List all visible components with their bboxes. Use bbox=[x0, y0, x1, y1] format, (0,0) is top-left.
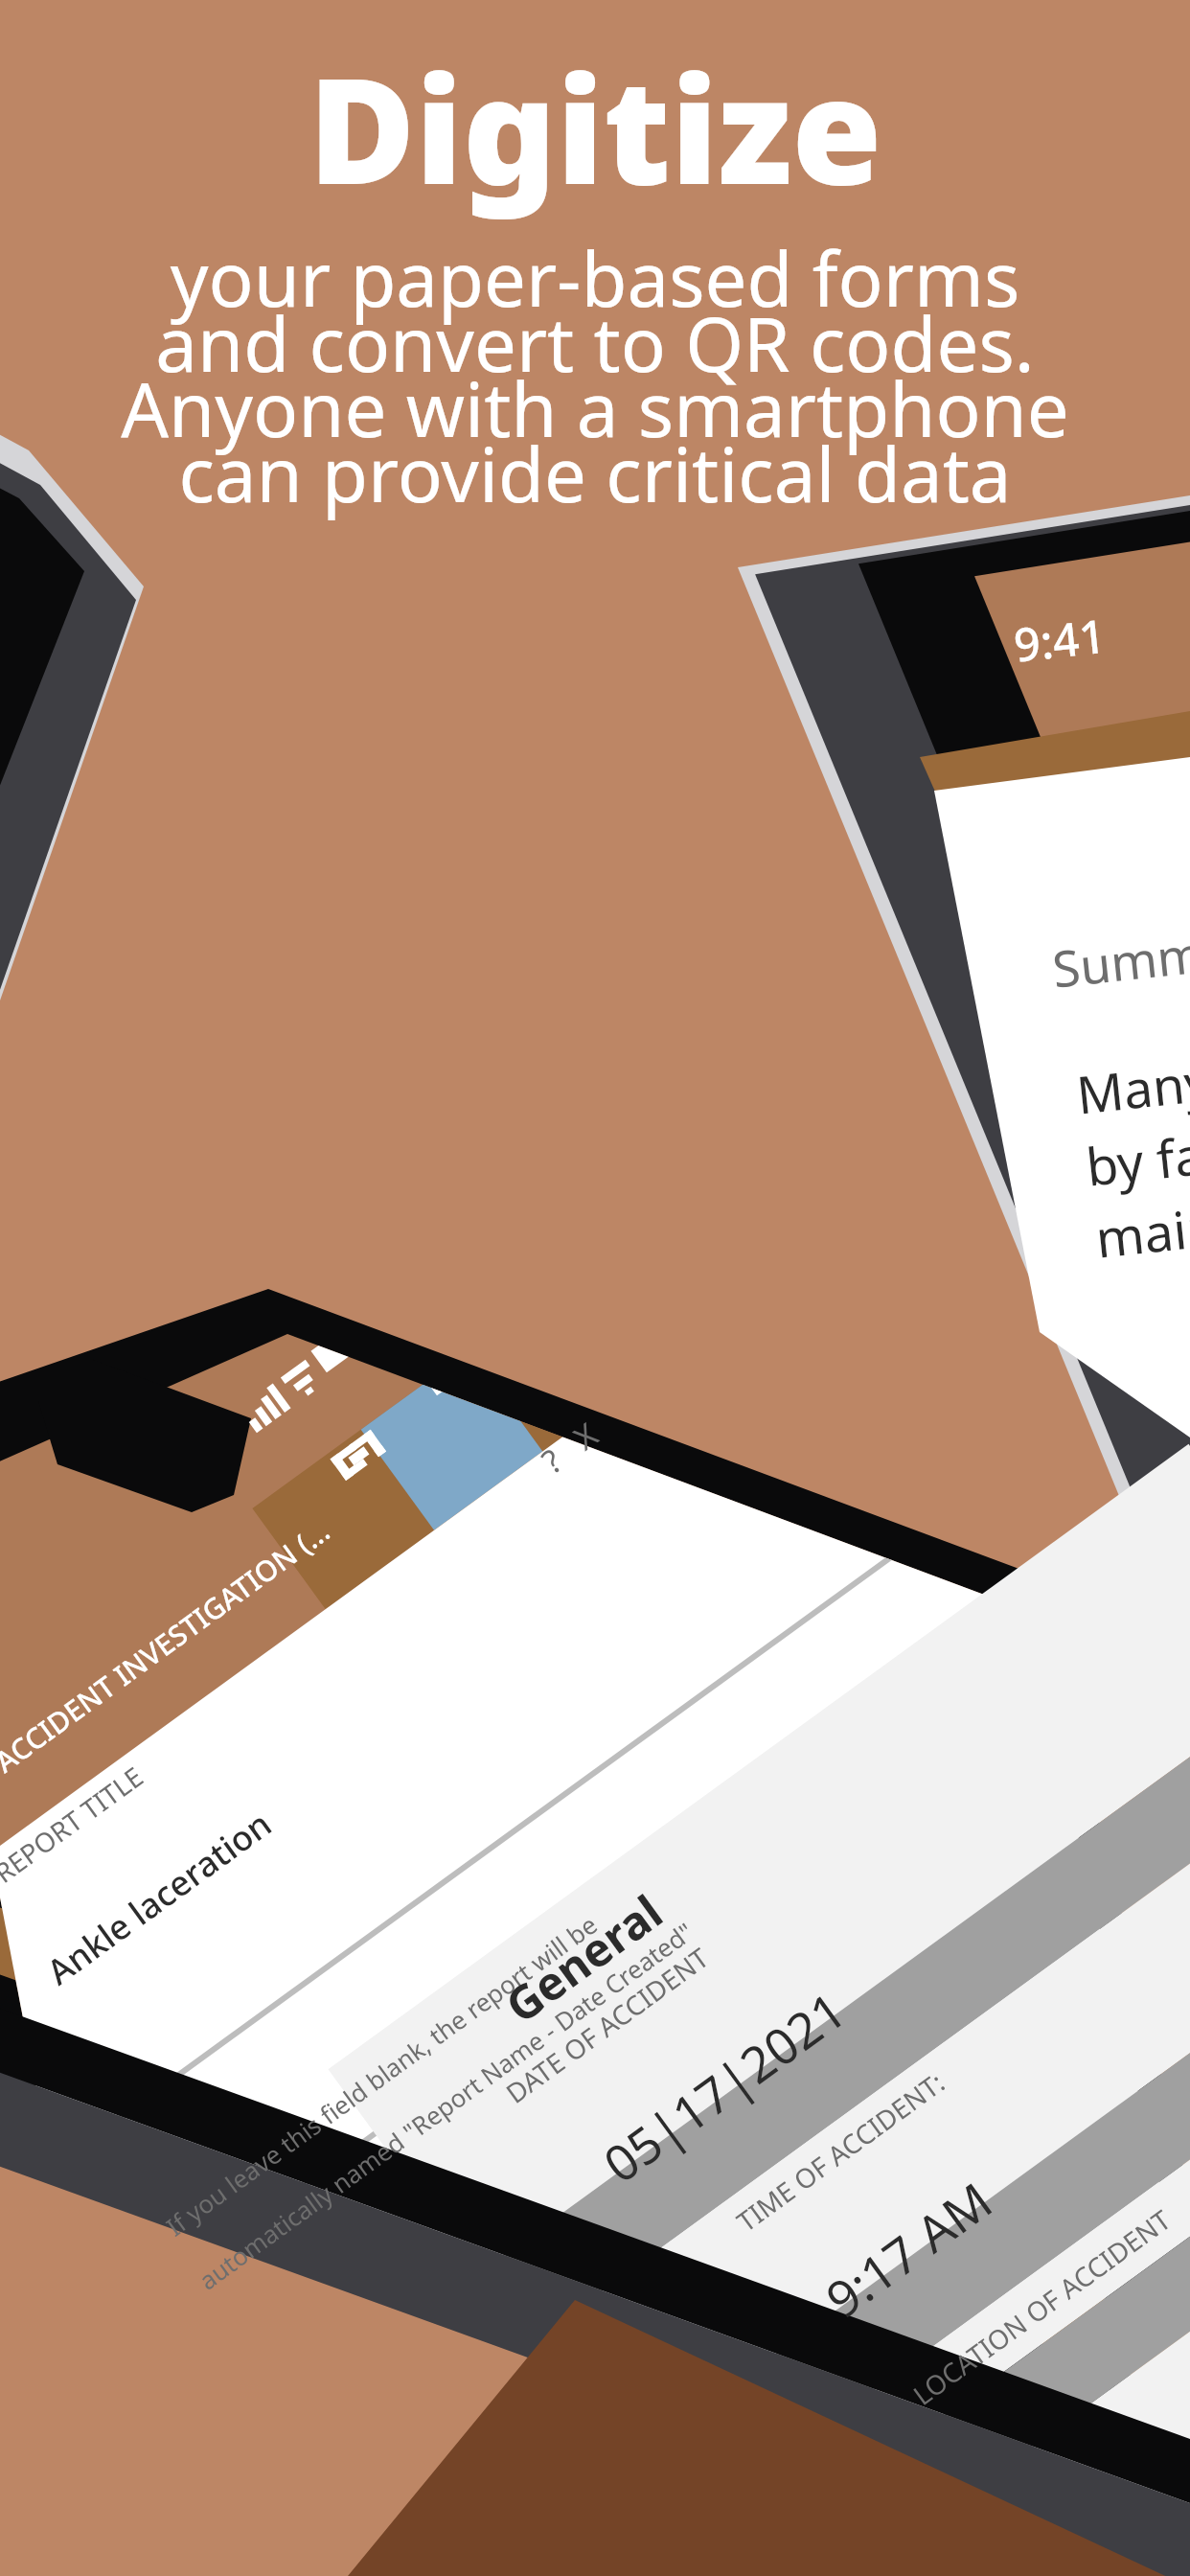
button[interactable]: Help bbox=[463, 1399, 556, 1493]
button[interactable]: Share report bbox=[404, 1324, 508, 1421]
staticText: DATE OF ACCIDENT bbox=[498, 1939, 716, 2111]
staticText: REPORT TITLE bbox=[0, 1758, 150, 1891]
button[interactable]: Location of accident bbox=[849, 2038, 1190, 2509]
button[interactable]: Report title field bbox=[0, 1582, 425, 2029]
staticText: Ankle laceration bbox=[37, 1800, 280, 1995]
staticText: automatically named "Report Name - Date … bbox=[192, 1914, 700, 2296]
staticText: LOCATION OF ACCIDENT bbox=[905, 2201, 1178, 2413]
button[interactable]: Back bbox=[996, 560, 1150, 680]
button[interactable]: Scan QR code bbox=[309, 1405, 412, 1502]
staticText: 9:17 AM bbox=[812, 2165, 1005, 2332]
staticText: 05|17|2021 bbox=[589, 1975, 859, 2197]
staticText: ? X bbox=[533, 1412, 607, 1483]
staticText: your paper-based forms and convert to QR… bbox=[121, 227, 1069, 524]
staticText: If you leave this field blank, the repor… bbox=[159, 1907, 604, 2243]
staticText: by falls bbox=[1083, 1113, 1190, 1201]
staticText: ACCIDENT INVESTIGATION (... bbox=[0, 1511, 338, 1781]
staticText: maint bbox=[1092, 1188, 1190, 1273]
staticText: Summary bbox=[1049, 911, 1190, 1002]
staticText: Many se bbox=[1073, 1038, 1190, 1129]
button[interactable]: Close bbox=[524, 1354, 618, 1448]
button[interactable]: Date of accident bbox=[426, 1717, 959, 2188]
staticText: General bbox=[492, 1880, 674, 2036]
staticText: 9:41 bbox=[1011, 604, 1109, 675]
staticText: Digitize bbox=[309, 29, 882, 227]
button[interactable]: Time of accident bbox=[658, 1856, 1190, 2327]
staticText: TIME OF ACCIDENT: bbox=[729, 2063, 952, 2239]
